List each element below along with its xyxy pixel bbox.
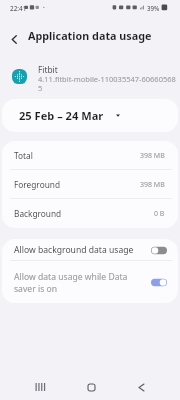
staticText: Fitbit: [38, 64, 58, 75]
staticText: Background: [14, 208, 62, 219]
staticText: Application data usage: [28, 28, 152, 43]
button[interactable]: Home: [82, 379, 100, 395]
button[interactable]: Recent apps: [31, 379, 49, 395]
button[interactable]: Allow background data usage: [2, 239, 178, 261]
button[interactable]: On: [151, 278, 167, 287]
staticText: 4.11.fitbit-mobile-110035547-60660568 5: [38, 74, 176, 93]
button[interactable]: 25 Feb – 24 Mar: [2, 99, 178, 132]
staticText: 398 MB: [140, 180, 165, 190]
staticText: Allow background data usage: [14, 244, 146, 256]
button[interactable]: Foreground: [2, 170, 178, 199]
staticText: 398 MB: [140, 151, 165, 161]
staticText: 22:41: [10, 4, 27, 13]
staticText: Foreground: [14, 179, 61, 190]
staticText: Allow data usage while Data saver is on: [14, 271, 146, 294]
button[interactable]: Back: [132, 379, 150, 395]
staticText: 0 B: [154, 209, 165, 219]
button[interactable]: Allow data usage while Data saver is on: [2, 261, 178, 303]
button[interactable]: Navigate up: [6, 31, 23, 48]
staticText: Total: [14, 150, 33, 161]
button[interactable]: Total: [2, 141, 178, 170]
button[interactable]: Off: [151, 246, 167, 255]
staticText: 25 Feb – 24 Mar: [19, 108, 104, 123]
button[interactable]: Background: [2, 199, 178, 228]
staticText: 39%: [147, 4, 160, 12]
